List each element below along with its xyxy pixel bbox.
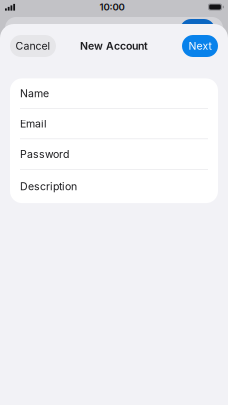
staticText: Password bbox=[20, 148, 69, 160]
button[interactable]: Password bbox=[10, 139, 218, 169]
button[interactable]: Cancel bbox=[10, 35, 56, 57]
staticText: Next bbox=[188, 40, 211, 52]
button[interactable]: Email bbox=[10, 109, 218, 138]
button[interactable]: Name bbox=[10, 78, 218, 108]
staticText: 10:00 bbox=[99, 1, 124, 13]
button[interactable]: Description bbox=[10, 170, 218, 203]
staticText: Cancel bbox=[15, 40, 50, 52]
staticText: New Account bbox=[80, 40, 148, 52]
staticText: Description bbox=[20, 180, 77, 193]
staticText: Email bbox=[20, 117, 47, 130]
staticText: Name bbox=[20, 87, 49, 100]
button[interactable]: Next bbox=[182, 35, 218, 57]
